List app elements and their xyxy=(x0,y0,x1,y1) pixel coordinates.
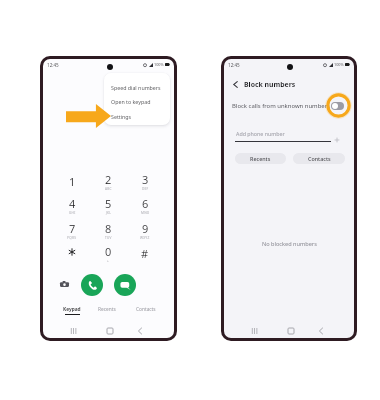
button[interactable]: Back xyxy=(314,324,327,337)
button[interactable]: # xyxy=(128,242,162,264)
staticText: 12:45 xyxy=(228,62,240,68)
button[interactable]: 2 xyxy=(91,170,125,192)
staticText: Speed dial numbers xyxy=(111,84,161,91)
button[interactable]: Recent apps xyxy=(248,324,261,337)
staticText: + xyxy=(107,259,110,263)
staticText: 1 xyxy=(69,174,76,189)
staticText: Contacts xyxy=(136,306,156,313)
button[interactable]: 8 xyxy=(91,219,125,241)
staticText: Keypad xyxy=(63,306,81,313)
button[interactable]: Contacts xyxy=(293,153,345,164)
staticText: 2 xyxy=(105,172,112,187)
staticText: Recents xyxy=(250,155,271,162)
staticText: Settings xyxy=(111,113,132,120)
staticText: 6 xyxy=(142,196,149,211)
button[interactable]: 6 xyxy=(128,194,162,216)
button[interactable]: 3 xyxy=(128,170,162,192)
staticText: DEF xyxy=(142,187,149,191)
staticText: 8 xyxy=(105,221,112,236)
button[interactable]: Home xyxy=(103,324,116,337)
button[interactable]: 9 xyxy=(128,219,162,241)
staticText: # xyxy=(141,246,149,261)
staticText: Recents xyxy=(98,306,116,313)
staticText: 12:45 xyxy=(47,62,59,68)
staticText: 7 xyxy=(69,221,76,236)
button[interactable]: Back xyxy=(229,78,242,91)
button[interactable]: Speed dial numbers xyxy=(104,80,170,94)
button[interactable]: Block calls from unknown numbers xyxy=(224,99,354,113)
staticText: Block numbers xyxy=(244,80,296,89)
staticText: Block calls from unknown numbers xyxy=(232,102,330,110)
button[interactable]: Open to keypad xyxy=(104,94,170,108)
staticText: 9 xyxy=(142,221,149,236)
staticText: TUV xyxy=(105,236,112,240)
button[interactable]: Back xyxy=(133,324,146,337)
button[interactable]: 0 xyxy=(91,242,125,264)
staticText: WXYZ xyxy=(140,236,150,240)
button[interactable]: 7 xyxy=(55,219,89,241)
staticText: 100% xyxy=(154,62,164,67)
staticText: 0 xyxy=(105,244,112,259)
staticText: 100% xyxy=(334,62,344,67)
button[interactable]: Message xyxy=(114,274,136,296)
staticText: Open to keypad xyxy=(111,98,151,105)
staticText: No blocked numbers xyxy=(262,240,317,248)
button[interactable]: 1 xyxy=(55,170,89,192)
button[interactable]: 5 xyxy=(91,194,125,216)
staticText: JKL xyxy=(106,211,112,215)
button[interactable]: Add xyxy=(334,137,340,143)
button[interactable]: Home xyxy=(284,324,297,337)
staticText: MNO xyxy=(141,211,150,215)
button[interactable]: Recents xyxy=(88,306,126,323)
button[interactable]: Keypad xyxy=(53,306,91,323)
button[interactable]: Settings xyxy=(104,109,170,123)
staticText: 4 xyxy=(69,196,76,211)
staticText: GHI xyxy=(69,211,76,215)
button[interactable]: 4 xyxy=(55,194,89,216)
staticText: Contacts xyxy=(308,155,331,162)
staticText: PQRS xyxy=(67,236,77,240)
button[interactable]: Recents xyxy=(235,153,286,164)
staticText: ABC xyxy=(105,187,112,191)
button[interactable]: Call xyxy=(81,274,103,296)
staticText: Add phone number xyxy=(236,130,285,137)
staticText: 5 xyxy=(105,196,112,211)
button[interactable]: Recent apps xyxy=(67,324,80,337)
button[interactable]: Camera xyxy=(58,277,71,290)
staticText: 3 xyxy=(142,172,149,187)
button[interactable] xyxy=(55,242,89,264)
button[interactable]: Contacts xyxy=(127,306,165,323)
